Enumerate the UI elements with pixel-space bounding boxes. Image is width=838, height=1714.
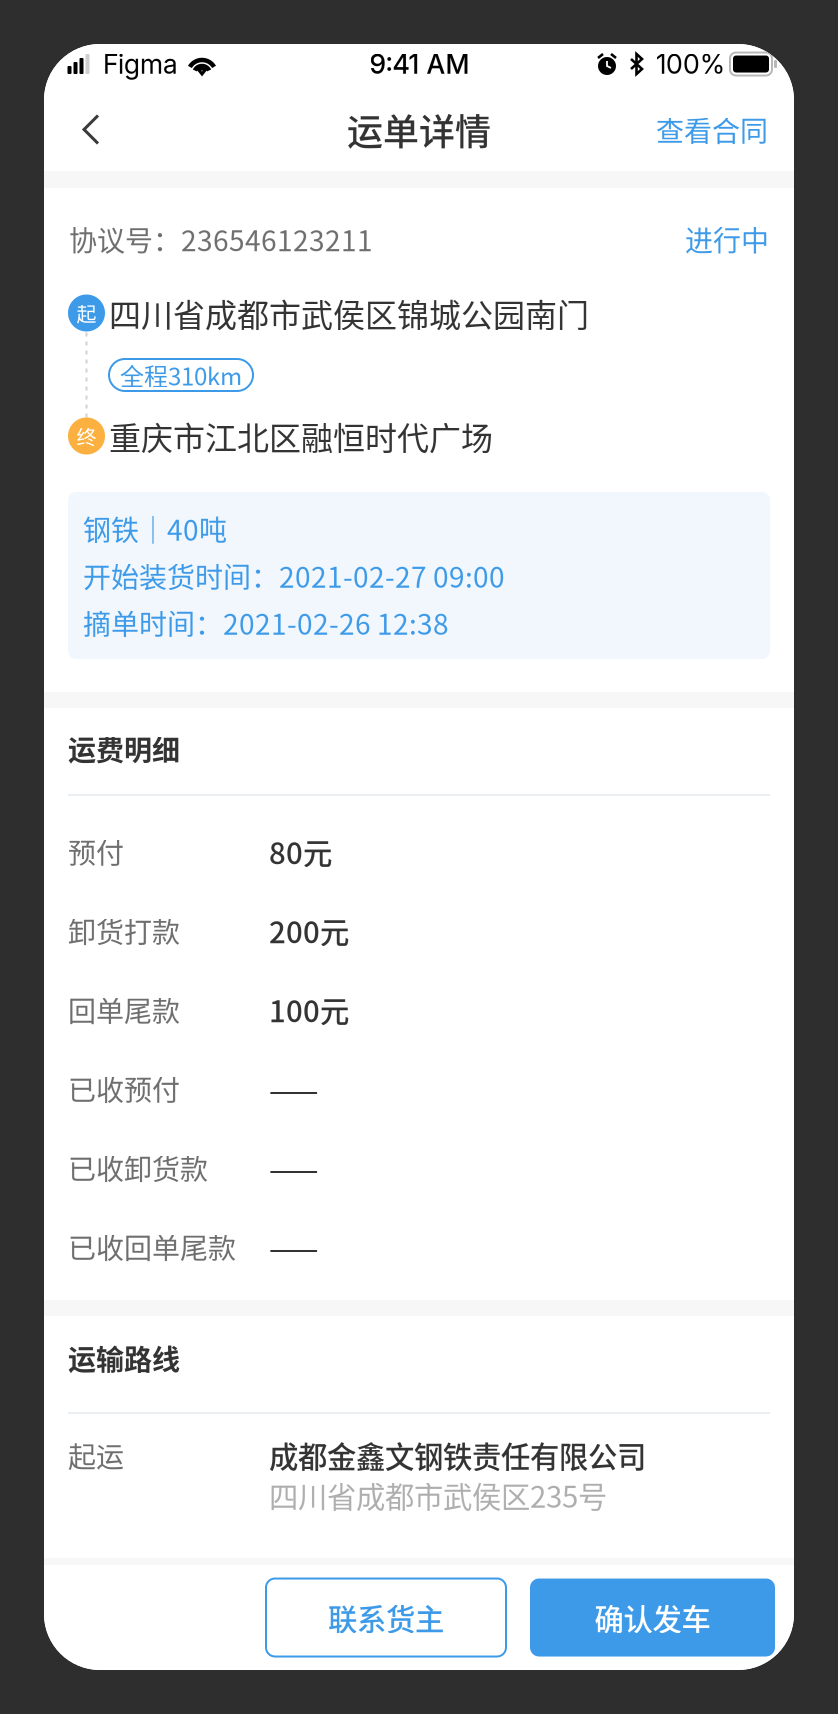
staticText: 已收卸货款 <box>68 1147 208 1188</box>
staticText: 200元 <box>269 909 349 952</box>
button[interactable]: 确认发车 <box>530 1578 775 1656</box>
staticText: 运费明细 <box>68 728 180 769</box>
staticText: 联系货主 <box>328 1596 444 1639</box>
staticText: 回单尾款 <box>68 989 180 1030</box>
staticText: 确认发车 <box>594 1596 710 1639</box>
staticText: 四川省成都市武侯区235号 <box>269 1474 607 1516</box>
button[interactable]: 查看合同 <box>644 88 780 171</box>
staticText: 成都金鑫文钢铁责任有限公司 <box>269 1434 646 1476</box>
staticText: Figma <box>103 48 178 80</box>
staticText: 起 <box>76 298 96 327</box>
staticText: 起运 <box>68 1435 124 1475</box>
staticText: 全程310km <box>120 358 242 392</box>
staticText: —— <box>269 1067 318 1110</box>
staticText: 查看合同 <box>656 109 768 150</box>
staticText: 卸货打款 <box>68 910 180 951</box>
staticText: 重庆市江北区融恒时代广场 <box>109 413 493 459</box>
button[interactable]: 联系货主 <box>266 1578 506 1656</box>
staticText: 开始装货时间：2021-02-27 09:00 <box>83 555 505 596</box>
staticText: 协议号：236546123211 <box>69 219 373 259</box>
staticText: 四川省成都市武侯区锦城公园南门 <box>109 290 589 336</box>
staticText: 80元 <box>269 830 332 873</box>
staticText: 终 <box>76 421 96 450</box>
button[interactable]: 返回 <box>56 88 126 171</box>
staticText: 已收回单尾款 <box>68 1226 236 1267</box>
staticText: 进行中 <box>685 219 769 259</box>
staticText: 已收预付 <box>68 1068 180 1109</box>
staticText: —— <box>269 1225 318 1268</box>
staticText: 9:41 AM <box>369 48 469 80</box>
staticText: 运单详情 <box>347 103 491 155</box>
staticText: —— <box>269 1146 318 1189</box>
button[interactable]: 进行中 <box>685 219 769 259</box>
staticText: 摘单时间：2021-02-26 12:38 <box>83 602 449 643</box>
staticText: 100元 <box>269 988 349 1031</box>
staticText: 100% <box>656 48 725 80</box>
staticText: 运输路线 <box>68 1338 180 1378</box>
staticText: 预付 <box>68 831 124 872</box>
staticText: 钢铁｜40吨 <box>83 508 227 549</box>
